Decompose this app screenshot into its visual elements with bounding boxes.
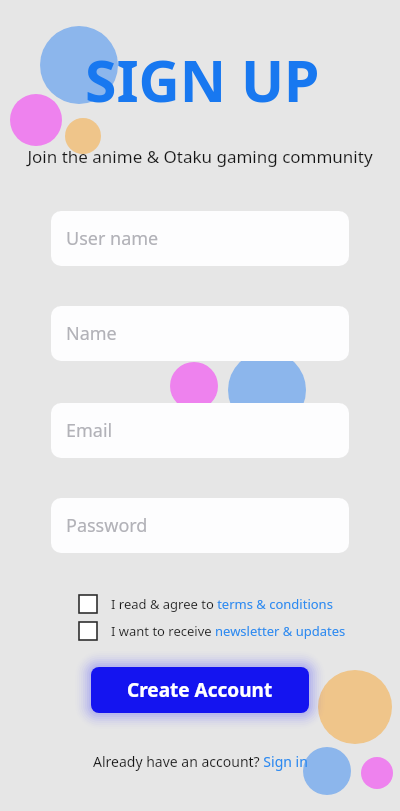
staticText: Email <box>66 418 113 443</box>
button[interactable]: Name <box>51 306 349 361</box>
staticText: Create Account <box>127 677 273 703</box>
button[interactable]: I read and agree to terms and conditions <box>79 593 333 615</box>
staticText: I read & agree to terms & conditions <box>111 595 333 613</box>
button[interactable]: I want to receive newsletter and updates <box>79 620 346 642</box>
staticText: Password <box>66 513 148 538</box>
staticText: SIGN UP <box>85 41 320 119</box>
button[interactable]: Already have an account? Sign in <box>89 750 312 773</box>
staticText: Name <box>66 321 117 346</box>
button[interactable]: Create Account <box>91 667 309 713</box>
staticText: Join the anime & Otaku gaming community <box>0 145 400 168</box>
staticText: Already have an account? Sign in <box>93 752 308 771</box>
staticText: User name <box>66 226 159 251</box>
button[interactable]: Email <box>51 403 349 458</box>
staticText: I want to receive newsletter & updates <box>111 622 346 640</box>
button[interactable]: Password <box>51 498 349 553</box>
button[interactable]: User name <box>51 211 349 266</box>
